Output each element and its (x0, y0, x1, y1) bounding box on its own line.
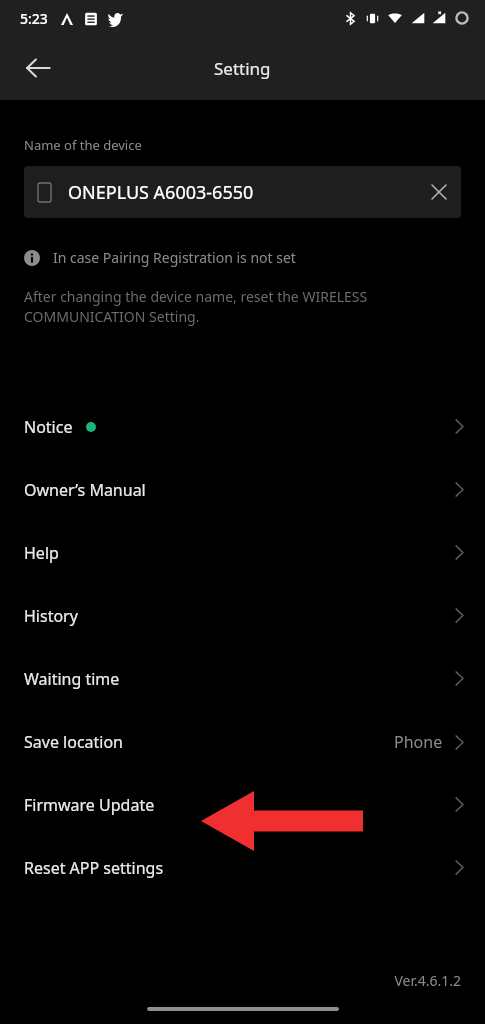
staticText: In case Pairing Registration is not set (53, 248, 296, 267)
staticText: 5:23 (20, 9, 48, 28)
staticText: Phone (394, 731, 443, 753)
staticText: Waiting time (24, 668, 120, 690)
staticText: Setting (214, 57, 271, 80)
staticText: Save location (24, 731, 124, 753)
button[interactable]: Owner’s Manual (0, 458, 485, 521)
button[interactable]: Save location (0, 710, 485, 773)
staticText: After changing the device name, reset th… (24, 287, 368, 327)
staticText: Owner’s Manual (24, 479, 146, 501)
button[interactable]: Help (0, 521, 485, 584)
button[interactable]: Notice (0, 395, 485, 458)
staticText: Firmware Update (24, 794, 155, 816)
staticText: Reset APP settings (24, 857, 164, 879)
staticText: Notice (24, 416, 73, 438)
staticText: Ver.4.6.1.2 (0, 971, 461, 990)
button[interactable]: Firmware Update (0, 773, 485, 836)
button[interactable]: Back (14, 44, 62, 92)
button[interactable]: History (0, 584, 485, 647)
button[interactable]: Clear device name (417, 170, 461, 214)
staticText: Name of the device (24, 136, 142, 154)
button[interactable]: Waiting time (0, 647, 485, 710)
staticText: ONEPLUS A6003-6550 (68, 180, 254, 205)
staticText: Help (24, 542, 59, 564)
staticText: History (24, 605, 78, 627)
button[interactable]: Reset APP settings (0, 836, 485, 899)
button[interactable]: ONEPLUS A6003-6550 (24, 166, 461, 218)
